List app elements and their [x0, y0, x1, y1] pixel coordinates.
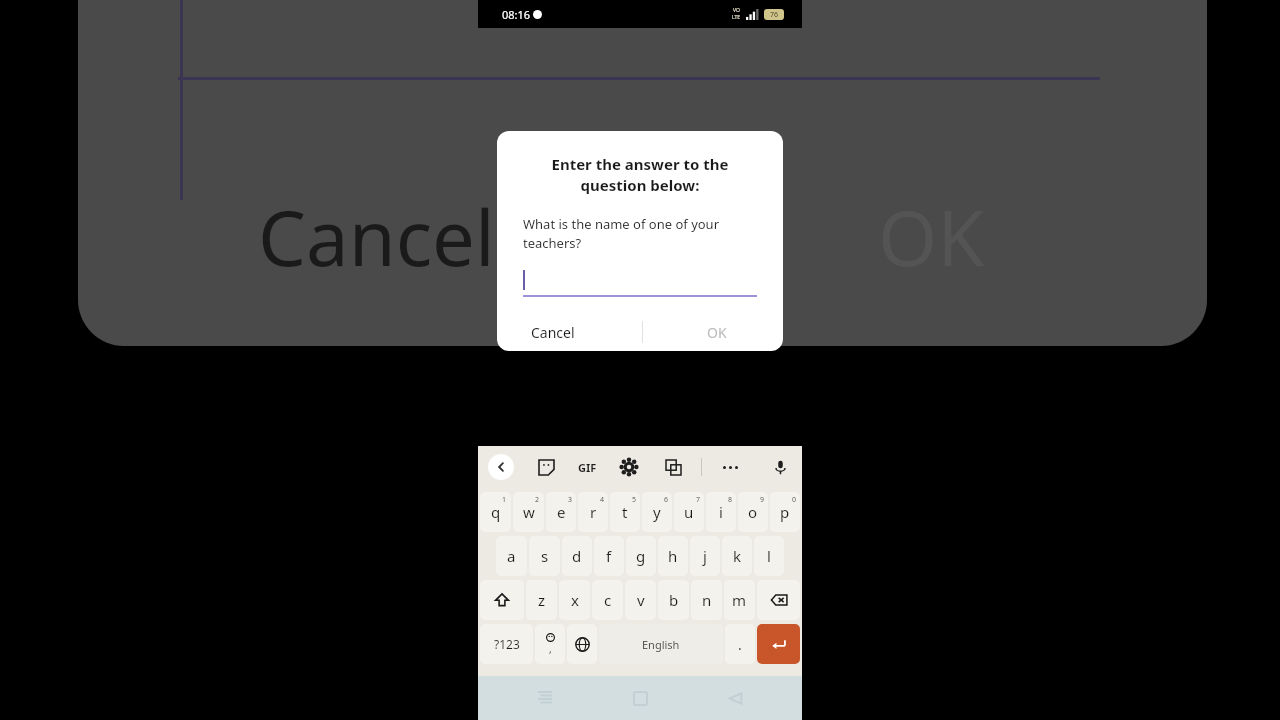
staticText: p — [780, 502, 790, 522]
staticText: VO — [733, 7, 740, 14]
staticText: Cancel — [258, 185, 495, 289]
button[interactable]: Translate — [661, 455, 685, 479]
staticText: a — [507, 546, 516, 566]
staticText: Enter the answer to the question below: — [515, 154, 765, 196]
button[interactable]: Emoji and comma — [535, 624, 565, 664]
button[interactable]: Shift — [480, 580, 524, 620]
staticText: y — [653, 502, 661, 522]
button[interactable]: GIF — [578, 460, 597, 475]
staticText: f — [606, 546, 612, 566]
staticText: j — [703, 546, 707, 566]
staticText: v — [637, 590, 645, 610]
button[interactable]: m — [724, 580, 755, 620]
staticText: u — [684, 502, 694, 522]
staticText: , — [549, 642, 552, 656]
button[interactable]: l — [754, 536, 784, 576]
button[interactable]: h — [658, 536, 688, 576]
button[interactable]: Home — [625, 683, 655, 713]
staticText: 76 — [770, 10, 779, 20]
staticText: 0 — [792, 495, 797, 505]
button[interactable]: j — [690, 536, 720, 576]
button[interactable]: k — [722, 536, 752, 576]
button[interactable]: w — [513, 492, 544, 532]
staticText: 6 — [664, 495, 669, 505]
staticText: GIF — [578, 460, 597, 475]
button[interactable]: Backspace — [757, 580, 800, 620]
button[interactable]: f — [594, 536, 624, 576]
button[interactable]: t — [610, 492, 640, 532]
staticText: h — [668, 546, 678, 566]
button[interactable]: o — [738, 492, 768, 532]
button[interactable]: Back — [720, 683, 750, 713]
staticText: w — [523, 502, 535, 522]
button[interactable]: u — [674, 492, 704, 532]
button[interactable]: r — [578, 492, 608, 532]
button[interactable]: i — [706, 492, 736, 532]
staticText: m — [732, 590, 747, 610]
staticText: q — [491, 502, 501, 522]
staticText: k — [733, 546, 742, 566]
button[interactable]: ?123 — [480, 624, 533, 664]
staticText: x — [571, 590, 579, 610]
staticText: 1 — [502, 495, 507, 505]
staticText: i — [719, 502, 723, 522]
staticText: d — [572, 546, 582, 566]
staticText: r — [590, 502, 597, 522]
button[interactable]: . — [725, 624, 755, 664]
button[interactable]: Recents — [530, 683, 560, 713]
button[interactable]: y — [642, 492, 672, 532]
button[interactable]: p — [770, 492, 800, 532]
staticText: 5 — [632, 495, 637, 505]
button[interactable]: v — [625, 580, 656, 620]
button[interactable]: Voice input — [768, 455, 792, 479]
staticText: l — [767, 546, 771, 566]
button[interactable]: e — [546, 492, 576, 532]
staticText: z — [538, 590, 546, 610]
button[interactable]: Back — [488, 454, 514, 480]
button[interactable]: Cancel — [523, 317, 583, 348]
staticText: t — [622, 502, 628, 522]
button[interactable]: Stickers — [534, 455, 558, 479]
button[interactable]: English — [599, 624, 723, 664]
staticText: g — [636, 546, 646, 566]
staticText: 4 — [600, 495, 605, 505]
button[interactable]: Change language — [567, 624, 597, 664]
staticText: 8 — [728, 495, 733, 505]
button[interactable]: d — [562, 536, 592, 576]
button[interactable]: n — [691, 580, 722, 620]
staticText: . — [738, 635, 742, 654]
staticText: OK — [707, 323, 727, 342]
button[interactable]: Settings — [617, 455, 641, 479]
staticText: 08:16 — [502, 7, 531, 22]
button[interactable]: OK — [699, 317, 735, 348]
staticText: e — [557, 502, 566, 522]
button[interactable]: z — [526, 580, 557, 620]
staticText: 7 — [696, 495, 701, 505]
staticText: n — [702, 590, 712, 610]
button[interactable] — [523, 268, 757, 297]
button[interactable]: More options — [718, 455, 742, 479]
staticText: o — [748, 502, 758, 522]
button[interactable]: x — [559, 580, 590, 620]
staticText: English — [642, 637, 680, 652]
staticText: 3 — [568, 495, 573, 505]
staticText: s — [541, 546, 549, 566]
staticText: Cancel — [531, 323, 575, 342]
button[interactable]: Enter — [757, 624, 800, 664]
staticText: c — [604, 590, 612, 610]
staticText: ?123 — [494, 636, 520, 652]
button[interactable]: a — [496, 536, 527, 576]
staticText: OK — [878, 185, 985, 289]
button[interactable]: q — [480, 492, 511, 532]
staticText: 2 — [535, 495, 540, 505]
button[interactable]: s — [529, 536, 560, 576]
staticText: What is the name of one of your teachers… — [523, 215, 765, 252]
button[interactable]: b — [658, 580, 689, 620]
button[interactable]: g — [626, 536, 656, 576]
button[interactable]: c — [592, 580, 623, 620]
staticText: 9 — [760, 495, 765, 505]
staticText: b — [669, 590, 679, 610]
staticText: LTE — [732, 14, 741, 21]
